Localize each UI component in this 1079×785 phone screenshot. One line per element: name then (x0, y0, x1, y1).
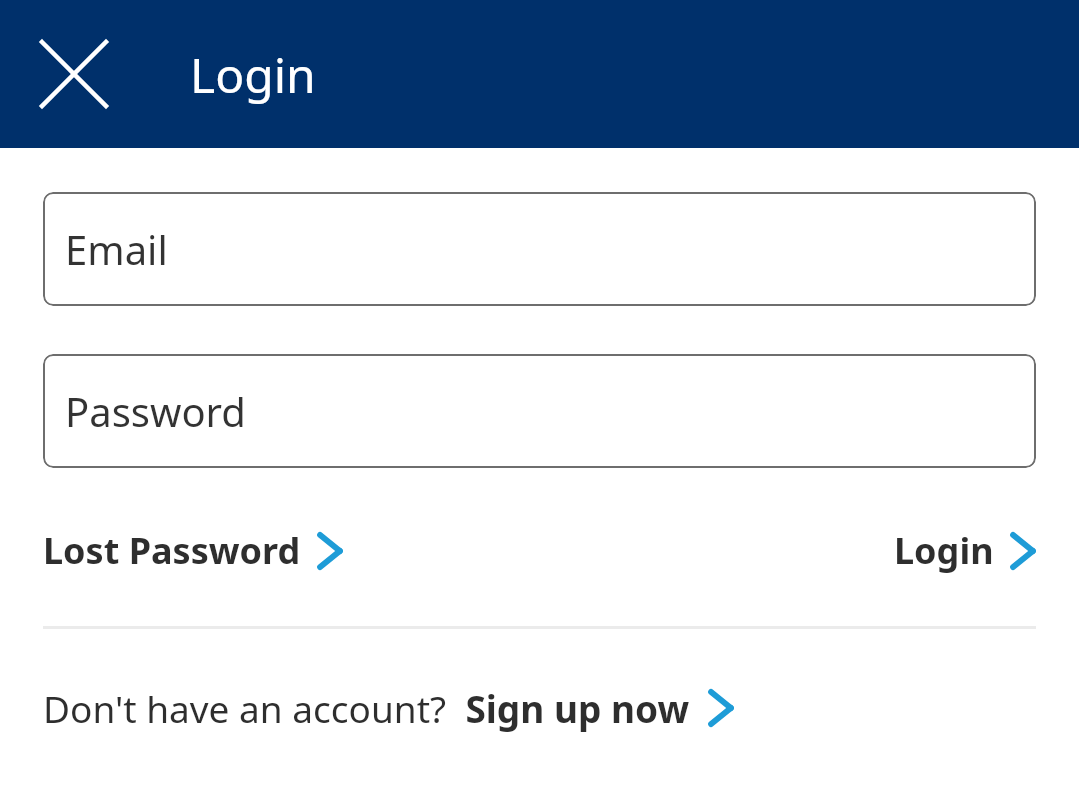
staticText: Lost Password (43, 526, 301, 575)
button[interactable]: Password (43, 354, 1036, 468)
button[interactable]: Don't have an account? Sign up now (43, 673, 1036, 743)
staticText: Email (65, 222, 168, 276)
staticText: Login (894, 526, 994, 575)
staticText: Login (190, 42, 316, 107)
staticText: Password (65, 384, 246, 438)
button[interactable]: Close (26, 26, 122, 122)
staticText: Don't have an account? Sign up now (43, 683, 690, 733)
button[interactable]: Lost Password (43, 526, 343, 575)
button[interactable]: Login (894, 526, 1036, 575)
button[interactable]: Email (43, 192, 1036, 306)
